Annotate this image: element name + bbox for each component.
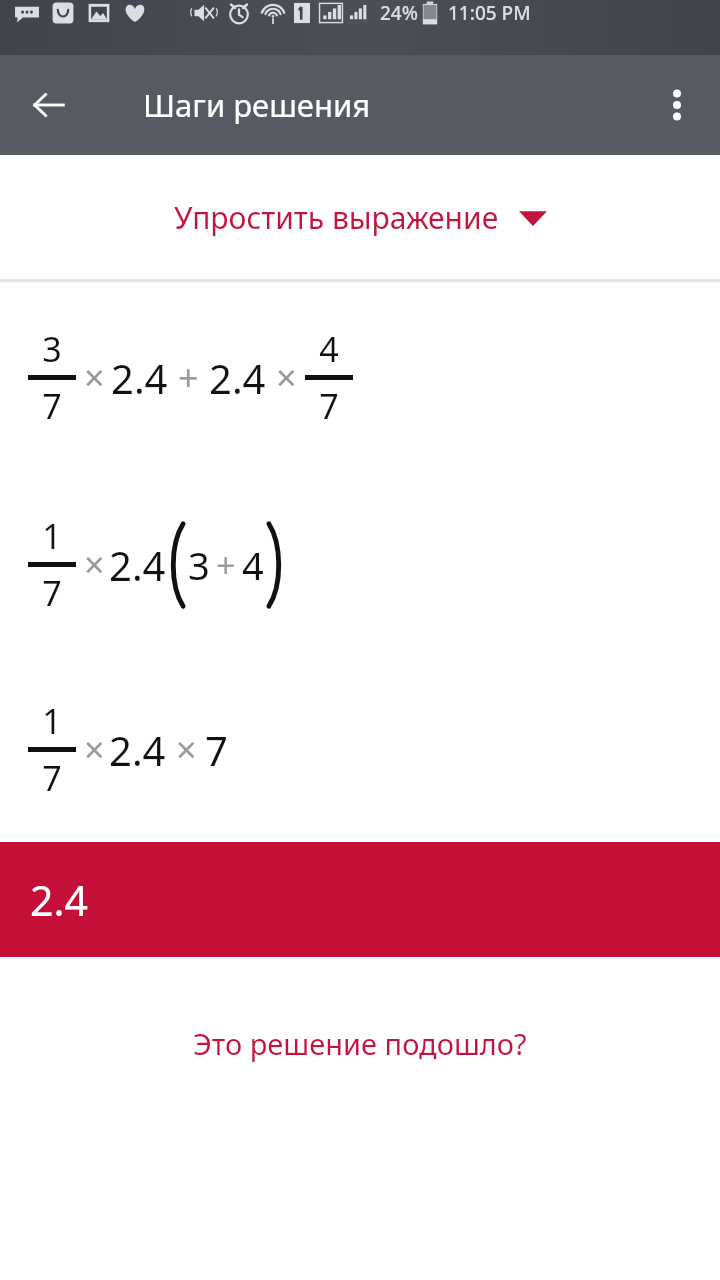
button[interactable]: More options (648, 76, 706, 134)
staticText: 2.4 (209, 351, 266, 405)
staticText: 7 (205, 723, 228, 777)
staticText: 3 (188, 539, 210, 591)
staticText: 1 (42, 513, 62, 559)
staticText: 7 (319, 383, 339, 429)
button[interactable]: 1 (0, 472, 720, 657)
staticText: × (176, 725, 197, 774)
staticText: + (216, 542, 236, 588)
staticText: 7 (42, 383, 62, 429)
staticText: 2.4 (30, 872, 88, 928)
button[interactable]: Это решение подошло? (0, 957, 720, 1129)
staticText: 2.4 (109, 723, 166, 777)
staticText: 4 (242, 539, 264, 591)
staticText: Упростить выражение (174, 197, 499, 238)
staticText: × (84, 725, 105, 774)
staticText: 11:05 PM (448, 0, 531, 26)
staticText: Это решение подошло? (193, 1024, 527, 1063)
staticText: × (84, 540, 105, 589)
staticText: 24% (380, 0, 418, 26)
staticText: × (276, 353, 297, 402)
staticText: 3 (42, 326, 62, 372)
staticText: 2.4 (111, 351, 168, 405)
staticText: 7 (42, 755, 62, 801)
staticText: × (84, 353, 105, 402)
staticText: 7 (42, 570, 62, 616)
staticText: 1 (42, 698, 62, 744)
button[interactable]: Back (18, 74, 80, 136)
staticText: Шаги решения (143, 84, 371, 126)
button[interactable]: 1 (0, 657, 720, 842)
staticText: 4 (319, 326, 339, 372)
staticText: 2.4 (109, 538, 166, 592)
staticText: + (178, 353, 199, 402)
button[interactable]: Упростить выражение (0, 155, 720, 279)
button[interactable]: 2.4 (0, 842, 720, 957)
button[interactable]: 3 (0, 282, 720, 472)
